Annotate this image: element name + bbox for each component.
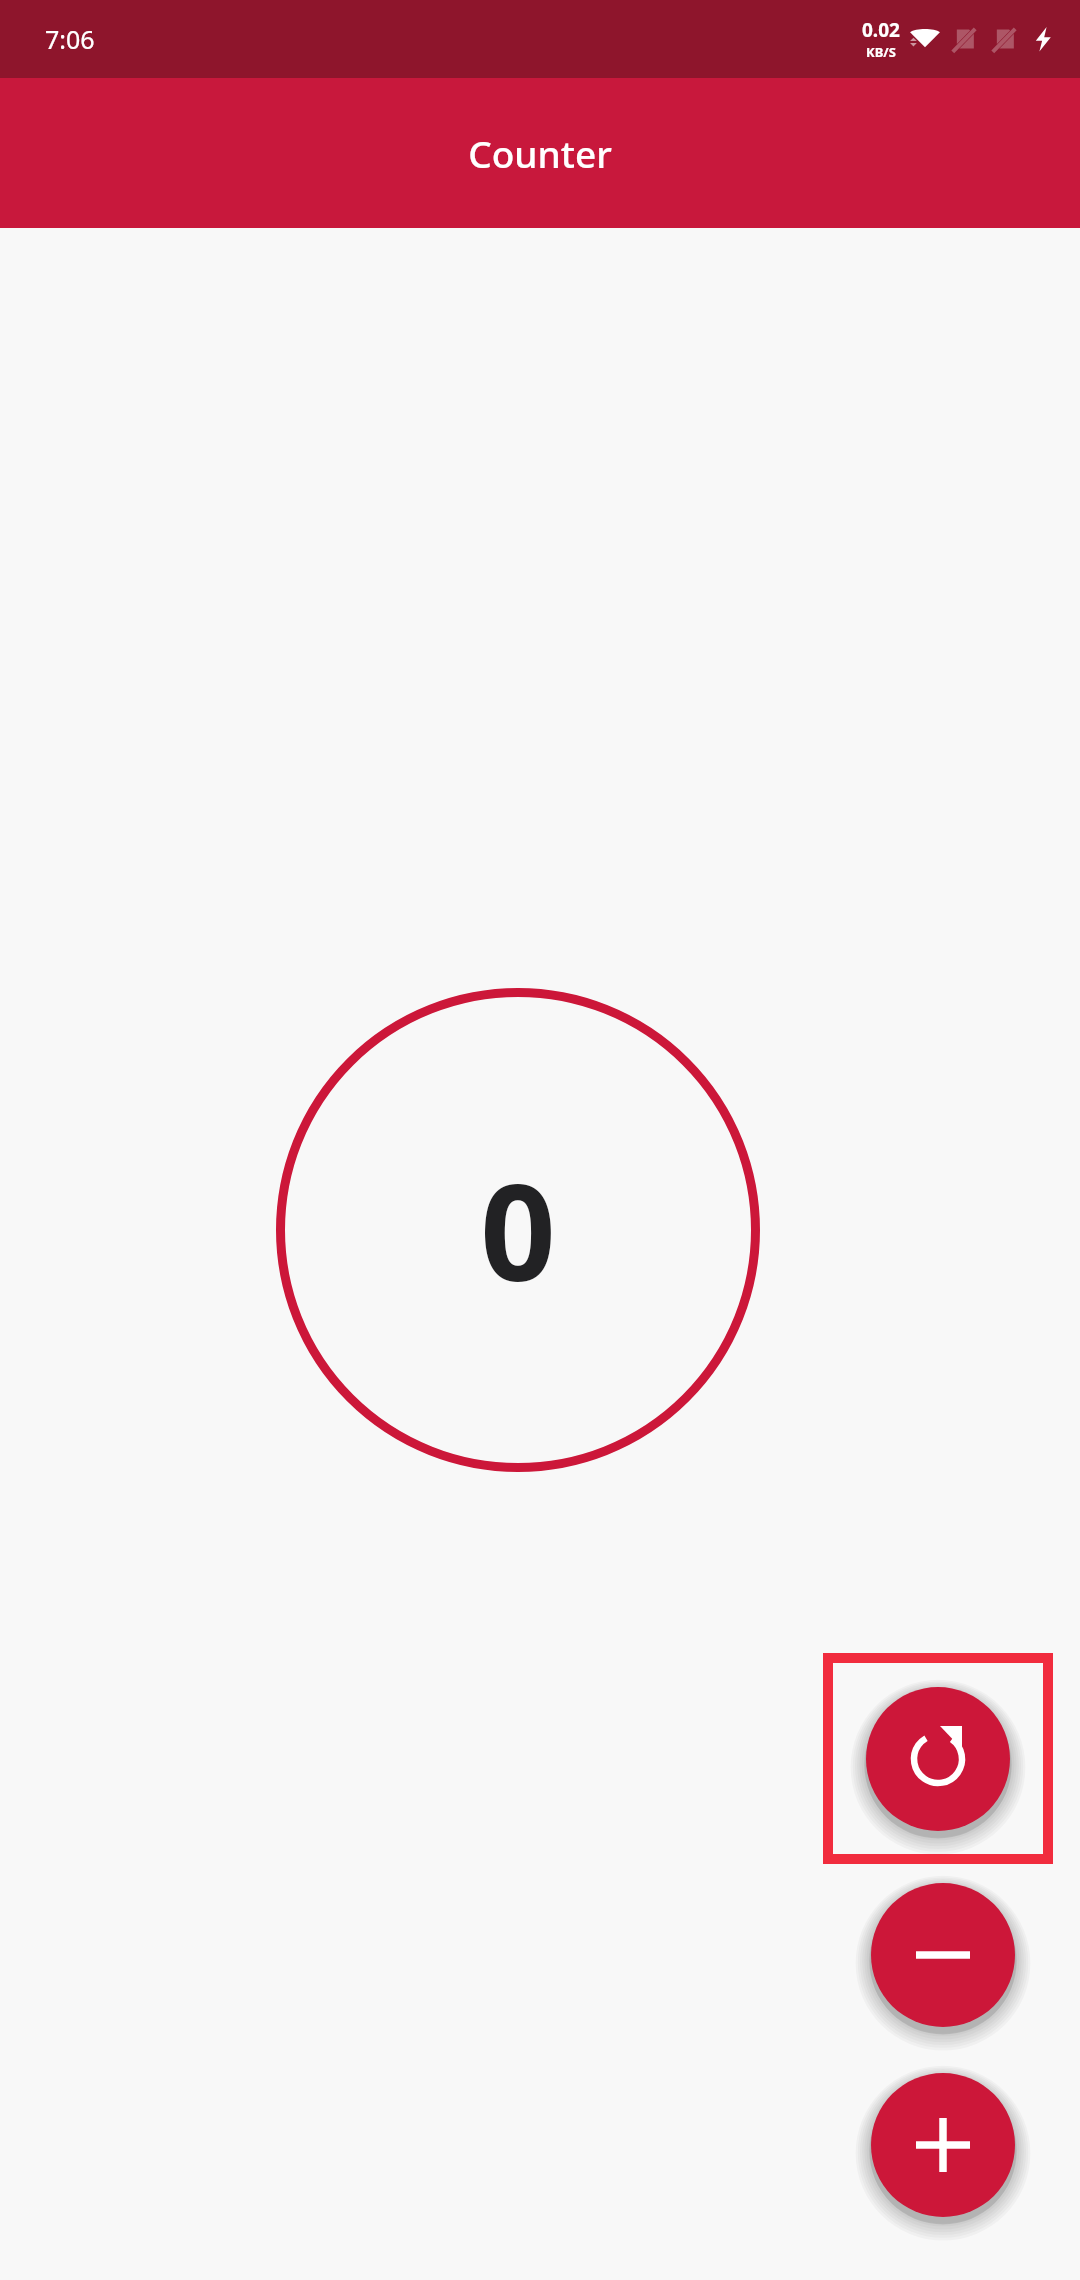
- staticText: 7:06: [45, 22, 95, 56]
- button[interactable]: Increment counter: [871, 2073, 1015, 2217]
- staticText: Counter: [468, 128, 612, 178]
- button[interactable]: Reset counter: [866, 1687, 1010, 1831]
- staticText: 0: [480, 1140, 556, 1320]
- button[interactable]: Decrement counter: [871, 1883, 1015, 2027]
- staticText: KB/S: [866, 43, 896, 61]
- staticText: 0.02: [862, 17, 900, 43]
